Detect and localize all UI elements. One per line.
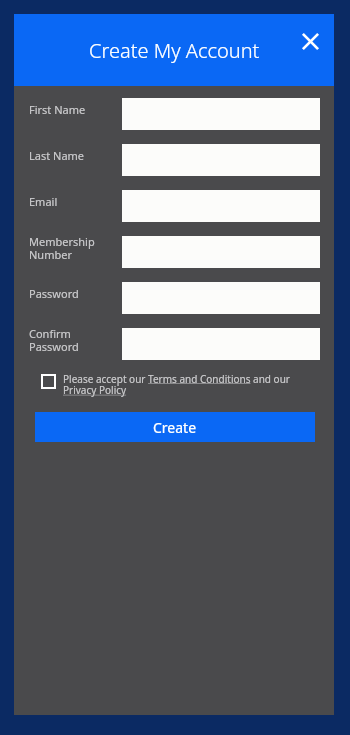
staticText: First Name: [29, 102, 86, 117]
button[interactable]: Password: [14, 276, 334, 322]
button[interactable]: Create: [35, 412, 315, 442]
button[interactable]: Confirm Password: [14, 322, 334, 368]
staticText: Create: [153, 418, 197, 437]
staticText: Membership Number: [29, 234, 95, 262]
button[interactable]: Close: [295, 26, 325, 56]
staticText: Confirm Password: [29, 326, 79, 354]
staticText: Password: [29, 286, 79, 301]
staticText: Create My Account: [89, 37, 260, 64]
button[interactable]: First Name: [14, 92, 334, 138]
button[interactable]: Membership Number: [14, 230, 334, 276]
staticText: Last Name: [29, 148, 85, 163]
button[interactable]: Email: [14, 184, 334, 230]
button[interactable]: Last Name: [14, 138, 334, 184]
staticText: Please accept our Terms and Conditions a…: [63, 372, 306, 397]
staticText: Email: [29, 194, 58, 209]
button[interactable]: Please accept our Terms and Conditions a…: [14, 368, 334, 398]
